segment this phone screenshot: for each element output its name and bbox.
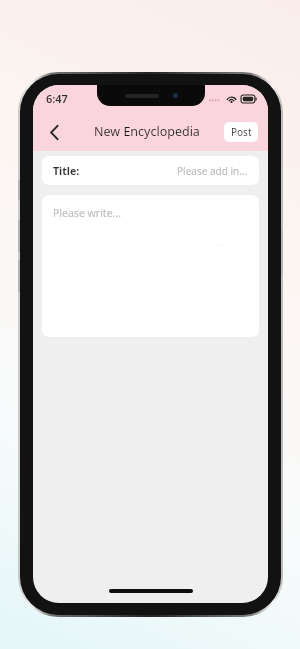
staticText: Please write... <box>53 206 122 220</box>
button[interactable]: Post <box>224 122 258 142</box>
staticText: 6:47 <box>46 91 68 106</box>
staticText: Post <box>231 125 252 139</box>
button[interactable]: Back <box>39 117 69 147</box>
staticText: Title: <box>53 164 80 178</box>
button[interactable]: Please write... <box>42 195 259 337</box>
button[interactable]: Title: <box>42 156 259 185</box>
staticText: Please add in... <box>177 164 248 178</box>
staticText: New Encyclopedia <box>94 123 200 140</box>
